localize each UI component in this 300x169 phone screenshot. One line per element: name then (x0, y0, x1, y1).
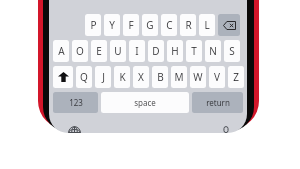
staticText: space (134, 97, 156, 108)
staticText: F (128, 18, 134, 32)
button[interactable]: U (110, 40, 126, 62)
button[interactable]: X (133, 66, 149, 88)
button[interactable]: S (224, 40, 240, 62)
button[interactable]: E (91, 40, 107, 62)
staticText: G (146, 18, 154, 32)
button[interactable]: H (167, 40, 183, 62)
staticText: C (166, 18, 173, 32)
staticText: Q (80, 70, 88, 84)
button[interactable]: C (161, 14, 177, 36)
staticText: W (193, 70, 203, 84)
button[interactable]: Switch keyboard (64, 122, 84, 133)
button[interactable]: V (209, 66, 225, 88)
button[interactable]: K (114, 66, 130, 88)
button[interactable]: N (205, 40, 221, 62)
button[interactable]: T (186, 40, 202, 62)
button[interactable]: Y (104, 14, 120, 36)
staticText: H (171, 44, 179, 58)
staticText: R (185, 18, 192, 32)
button[interactable]: return (192, 92, 243, 113)
staticText: S (229, 44, 235, 58)
staticText: J (102, 70, 105, 84)
button[interactable]: B (152, 66, 168, 88)
button[interactable]: Dictation (216, 122, 236, 133)
staticText: X (138, 70, 144, 84)
staticText: N (209, 44, 217, 58)
button[interactable]: P (85, 14, 101, 36)
button[interactable]: O (72, 40, 88, 62)
staticText: K (119, 70, 126, 84)
staticText: Z (233, 70, 239, 84)
button[interactable]: A (53, 40, 69, 62)
button[interactable]: Z (228, 66, 244, 88)
staticText: L (204, 18, 210, 32)
button[interactable]: F (123, 14, 139, 36)
staticText: T (191, 44, 197, 58)
button[interactable]: L (199, 14, 215, 36)
button[interactable]: 123 (53, 92, 98, 113)
staticText: B (157, 70, 164, 84)
button[interactable]: Shift (53, 66, 73, 88)
button[interactable]: D (148, 40, 164, 62)
staticText: A (58, 44, 65, 58)
button[interactable]: J (95, 66, 111, 88)
staticText: Y (109, 18, 115, 32)
staticText: M (174, 70, 184, 84)
button[interactable]: R (180, 14, 196, 36)
staticText: V (214, 70, 220, 84)
staticText: P (90, 18, 97, 32)
button[interactable]: Backspace (218, 14, 240, 36)
staticText: D (152, 44, 160, 58)
button[interactable]: M (171, 66, 187, 88)
button[interactable]: space (101, 92, 189, 113)
staticText: return (206, 97, 230, 108)
button[interactable]: I (129, 40, 145, 62)
button[interactable]: W (190, 66, 206, 88)
staticText: O (76, 44, 84, 58)
staticText: I (135, 44, 139, 58)
button[interactable]: Q (76, 66, 92, 88)
button[interactable]: G (142, 14, 158, 36)
staticText: U (114, 44, 122, 58)
staticText: E (96, 44, 102, 58)
staticText: 123 (69, 97, 83, 108)
